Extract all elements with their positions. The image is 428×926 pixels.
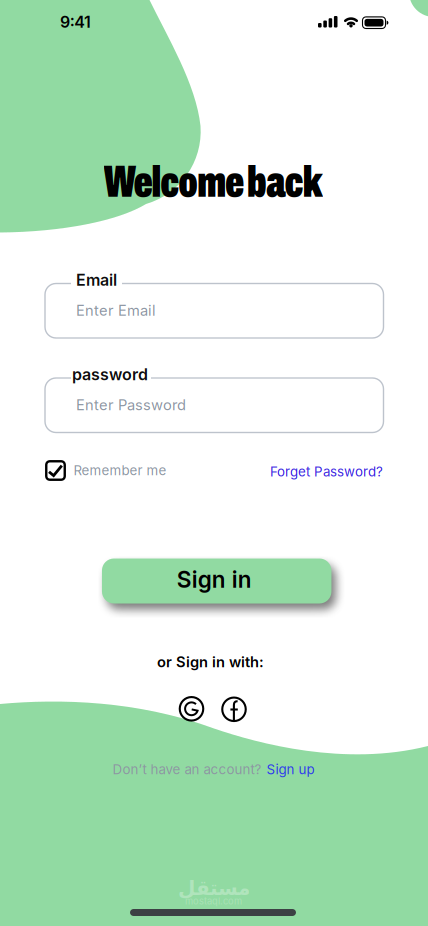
staticText: 9:41 (60, 13, 91, 31)
staticText: Welcome back (103, 158, 323, 206)
staticText: Don’t have an account? (112, 762, 261, 777)
staticText: or Sign in with: (157, 653, 264, 671)
button[interactable]: Sign up (266, 762, 314, 777)
staticText: مستقل (177, 877, 249, 899)
button[interactable]: Sign in with Facebook (220, 695, 248, 723)
staticText: Sign in (177, 566, 252, 593)
button[interactable]: Remember me (45, 460, 166, 481)
button[interactable]: Sign in with Google (177, 695, 205, 723)
staticText: Sign up (266, 762, 314, 777)
staticText: Forget Password? (270, 464, 383, 479)
staticText: password (72, 365, 148, 384)
button[interactable]: Forget Password? (270, 464, 383, 479)
staticText: Email (76, 271, 117, 289)
button[interactable]: Sign in (102, 558, 331, 603)
staticText: Enter Password (76, 396, 186, 414)
staticText: Enter Email (76, 302, 156, 319)
staticText: mostaql.com (185, 895, 242, 906)
staticText: Remember me (73, 463, 166, 478)
